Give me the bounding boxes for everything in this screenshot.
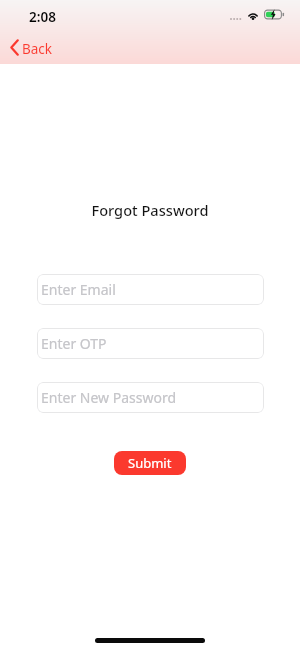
button[interactable]: Back: [10, 38, 53, 56]
staticText: Back: [22, 40, 53, 58]
staticText: Enter Email: [41, 280, 116, 299]
staticText: Forgot Password: [0, 200, 300, 220]
staticText: Submit: [128, 454, 172, 472]
button[interactable]: Enter OTP: [37, 328, 264, 359]
staticText: Enter OTP: [41, 334, 107, 353]
button[interactable]: Submit: [114, 451, 186, 475]
staticText: Enter New Password: [41, 388, 177, 407]
button[interactable]: Enter Email: [37, 274, 264, 305]
staticText: 2:08: [29, 8, 56, 26]
button[interactable]: Enter New Password: [37, 382, 264, 413]
